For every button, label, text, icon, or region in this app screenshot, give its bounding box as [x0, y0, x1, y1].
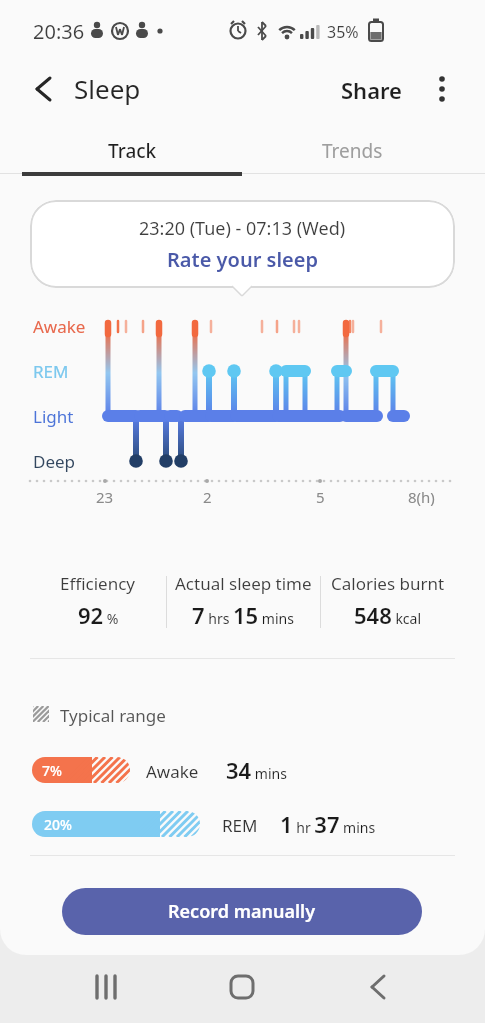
staticText: 5	[316, 487, 325, 507]
button[interactable]	[30, 75, 58, 103]
staticText: Trends	[322, 138, 383, 164]
staticText: 20%	[44, 815, 72, 834]
staticText: 548 kcal	[354, 600, 422, 630]
staticText: Calories burnt	[331, 572, 445, 595]
staticText: 23:20 (Tue) - 07:13 (Wed)	[139, 216, 346, 241]
staticText: Sleep	[74, 71, 141, 106]
button[interactable]: Record manually	[62, 888, 422, 935]
staticText: 35%	[327, 21, 359, 43]
staticText: Typical range	[60, 704, 166, 727]
staticText: 92 %	[78, 600, 119, 630]
staticText: Actual sleep time	[175, 572, 312, 595]
staticText: Awake	[146, 760, 199, 783]
staticText: Efficiency	[60, 572, 136, 595]
staticText: 34 mins	[226, 755, 287, 785]
staticText: 7 hrs 15 mins	[192, 600, 294, 630]
button[interactable]: Trends	[242, 130, 462, 172]
staticText: Deep	[33, 450, 76, 473]
staticText: Record manually	[168, 899, 316, 924]
staticText: REM	[33, 360, 69, 383]
staticText: 2	[203, 487, 212, 507]
staticText: 1 hr 37 mins	[280, 809, 376, 839]
button[interactable]	[211, 966, 273, 1012]
button[interactable]	[347, 966, 409, 1012]
staticText: REM	[222, 814, 258, 837]
staticText: Track	[108, 138, 157, 164]
button[interactable]: 23:20 (Tue) - 07:13 (Wed)	[30, 200, 455, 288]
staticText: Rate your sleep	[167, 246, 318, 273]
staticText: 23	[96, 487, 114, 507]
button[interactable]	[76, 966, 138, 1012]
button[interactable]	[430, 75, 454, 103]
staticText: Awake	[33, 315, 86, 338]
staticText: Light	[33, 405, 74, 428]
staticText: 20:36	[33, 18, 85, 45]
button[interactable]: Share	[341, 75, 402, 105]
staticText: 8(h)	[408, 487, 435, 507]
staticText: 7%	[42, 761, 62, 780]
button[interactable]: Track	[22, 130, 242, 172]
